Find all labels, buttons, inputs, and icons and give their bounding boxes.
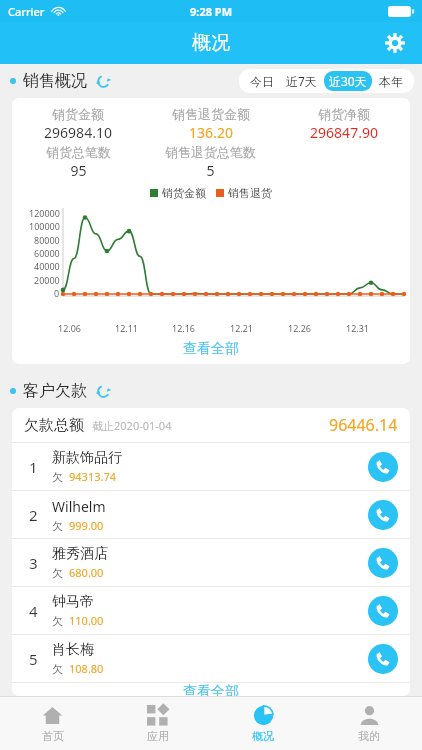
staticText: 销货金额	[52, 106, 104, 122]
button[interactable]: Call 肖长梅	[368, 644, 398, 674]
button[interactable]: Call Wilhelm	[368, 500, 398, 530]
button[interactable]: 近30天	[324, 71, 372, 91]
button[interactable]: Refresh	[93, 381, 113, 401]
staticText: 94313.74	[69, 469, 116, 484]
button[interactable]: 我的	[316, 697, 422, 750]
button[interactable]: Call 雅秀酒店	[368, 548, 398, 578]
button[interactable]: 概况	[210, 697, 316, 750]
staticText: 12.16	[172, 322, 196, 334]
staticText: Wilhelm	[52, 497, 106, 516]
staticText: 5	[206, 161, 215, 180]
button[interactable]: 5	[12, 635, 410, 682]
staticText: 108.80	[69, 661, 104, 676]
button[interactable]: 查看全部	[12, 334, 410, 364]
button[interactable]: Refresh	[93, 71, 113, 91]
staticText: 本年	[379, 74, 403, 89]
staticText: 新款饰品行	[52, 449, 122, 467]
staticText: 120000	[29, 207, 60, 219]
staticText: 20000	[34, 274, 60, 286]
staticText: 999.00	[69, 518, 104, 533]
staticText: 概况	[192, 31, 230, 55]
staticText: 销货金额	[162, 186, 206, 200]
button[interactable]: 今日	[245, 72, 279, 91]
staticText: 5	[29, 649, 38, 669]
staticText: 3	[29, 553, 38, 573]
button[interactable]: 首页	[0, 697, 105, 750]
staticText: 296847.90	[310, 123, 378, 142]
staticText: 欠款总额	[24, 416, 84, 435]
staticText: 钟马帝	[52, 593, 94, 611]
staticText: 欠	[52, 662, 63, 676]
staticText: 近30天	[329, 73, 367, 89]
staticText: Carrier	[8, 4, 45, 19]
staticText: 60000	[34, 247, 60, 259]
staticText: 96446.14	[329, 414, 398, 436]
button[interactable]: Call 钟马帝	[368, 596, 398, 626]
button[interactable]: 2	[12, 491, 410, 538]
staticText: 销售退货	[228, 186, 272, 200]
staticText: 136.20	[189, 123, 233, 142]
staticText: 销售退货总笔数	[165, 144, 256, 160]
staticText: 12.06	[58, 322, 82, 334]
staticText: 销售概况	[23, 71, 87, 91]
staticText: 应用	[147, 729, 169, 743]
button[interactable]: 4	[12, 587, 410, 634]
staticText: 今日	[250, 74, 274, 89]
staticText: 296984.10	[44, 123, 112, 142]
staticText: 销售退货金额	[172, 106, 250, 122]
staticText: 首页	[42, 729, 64, 743]
staticText: 100000	[29, 220, 60, 232]
staticText: 截止2020-01-04	[92, 418, 172, 433]
staticText: 雅秀酒店	[52, 545, 108, 563]
staticText: 销货净额	[318, 106, 370, 122]
staticText: 销货总笔数	[46, 144, 111, 160]
button[interactable]: 应用	[105, 697, 210, 750]
staticText: 欠	[52, 470, 63, 484]
staticText: 12.21	[230, 322, 254, 334]
button[interactable]: Settings	[378, 26, 412, 60]
button[interactable]: 3	[12, 539, 410, 586]
staticText: 客户欠款	[23, 381, 87, 401]
staticText: 欠	[52, 566, 63, 580]
staticText: 欠	[52, 519, 63, 533]
staticText: 概况	[252, 729, 274, 743]
staticText: 查看全部	[183, 683, 239, 696]
staticText: 12.26	[288, 322, 312, 334]
staticText: 2	[29, 505, 38, 525]
staticText: 4	[29, 601, 38, 621]
button[interactable]: 1	[12, 443, 410, 490]
staticText: 我的	[358, 729, 380, 743]
staticText: 肖长梅	[52, 641, 94, 659]
staticText: 0	[54, 287, 60, 299]
staticText: 680.00	[69, 565, 104, 580]
button[interactable]: Call 新款饰品行	[368, 452, 398, 482]
staticText: 110.00	[69, 613, 104, 628]
staticText: 95	[70, 161, 87, 180]
staticText: 近7天	[286, 73, 317, 89]
staticText: 1	[29, 457, 38, 477]
staticText: 9:28 PM	[190, 4, 233, 19]
button[interactable]: 本年	[374, 72, 408, 91]
staticText: 欠	[52, 614, 63, 628]
button[interactable]: 近7天	[281, 71, 322, 91]
button[interactable]: 查看全部	[12, 683, 410, 696]
staticText: 12.31	[346, 322, 370, 334]
staticText: 40000	[34, 260, 60, 272]
staticText: 查看全部	[183, 340, 239, 358]
staticText: 12.11	[115, 322, 139, 334]
staticText: 80000	[34, 234, 60, 246]
